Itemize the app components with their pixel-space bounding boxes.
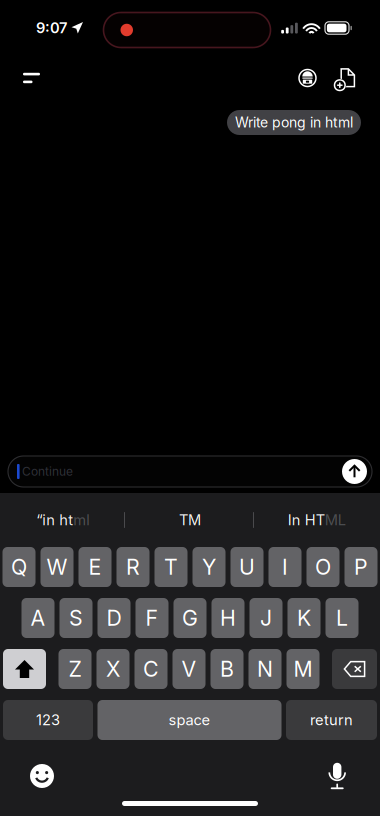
staticText: Q [11, 554, 27, 580]
button[interactable]: H [211, 598, 244, 638]
staticText: T [164, 554, 178, 580]
staticText: “in ht [36, 511, 73, 529]
staticText: M [293, 656, 312, 682]
staticText: X [106, 656, 120, 682]
staticText: O [315, 554, 331, 580]
staticText: C [143, 656, 159, 682]
button[interactable]: F [135, 598, 168, 638]
staticText: H [220, 605, 236, 631]
staticText: In HT [288, 511, 325, 529]
staticText: P [354, 554, 368, 580]
button[interactable]: B [210, 649, 243, 689]
button[interactable]: O [306, 547, 339, 587]
button[interactable]: Q [2, 547, 35, 587]
button[interactable]: Z [58, 649, 91, 689]
button[interactable]: A [21, 598, 54, 638]
staticText: G [182, 605, 198, 631]
button[interactable]: R [116, 547, 149, 587]
staticText: D [106, 605, 121, 631]
staticText: A [30, 605, 45, 631]
staticText: R [126, 554, 140, 580]
staticText: ml [73, 511, 90, 529]
button[interactable]: D [97, 598, 130, 638]
staticText: K [297, 605, 311, 631]
staticText: Write pong in html [235, 114, 353, 131]
staticText: N [257, 656, 273, 682]
button[interactable]: G [173, 598, 206, 638]
button[interactable]: Send [340, 457, 369, 486]
button[interactable]: V [172, 649, 205, 689]
button[interactable]: Y [192, 547, 225, 587]
button[interactable]: T [154, 547, 187, 587]
staticText: 9:07 [36, 19, 67, 37]
button[interactable]: K [287, 598, 320, 638]
button[interactable]: Delete [332, 649, 377, 689]
staticText: Y [202, 554, 216, 580]
button[interactable]: I [268, 547, 301, 587]
button[interactable]: P [344, 547, 377, 587]
button[interactable]: S [59, 598, 92, 638]
button[interactable]: E [78, 547, 111, 587]
staticText: TM [179, 511, 201, 529]
staticText: Continue [22, 464, 73, 479]
staticText: Z [68, 656, 81, 682]
button[interactable]: L [325, 598, 358, 638]
staticText: S [69, 605, 83, 631]
button[interactable]: M [286, 649, 319, 689]
button[interactable]: Sidebar [0, 57, 56, 99]
staticText: space [168, 711, 210, 729]
button[interactable]: J [249, 598, 282, 638]
button[interactable]: N [248, 649, 281, 689]
staticText: E [88, 554, 101, 580]
button[interactable]: space [97, 700, 281, 740]
staticText: W [46, 554, 67, 580]
button[interactable]: Model picker [289, 56, 326, 99]
button[interactable]: TM [127, 493, 253, 547]
button[interactable]: X [96, 649, 129, 689]
staticText: ML [325, 511, 346, 529]
button[interactable]: “in ht [0, 493, 127, 547]
staticText: I [282, 554, 288, 580]
button[interactable]: In HT [253, 493, 380, 547]
staticText: U [239, 554, 255, 580]
button[interactable]: 123 [3, 700, 93, 740]
staticText: B [220, 656, 234, 682]
button[interactable]: New chat [326, 56, 380, 100]
button[interactable]: return [286, 700, 377, 740]
button[interactable]: U [230, 547, 263, 587]
staticText: 123 [36, 711, 60, 729]
staticText: L [336, 605, 348, 631]
button[interactable]: Emoji keyboard [16, 753, 68, 799]
button[interactable]: W [40, 547, 73, 587]
button[interactable]: C [134, 649, 167, 689]
button[interactable]: Shift [3, 649, 46, 689]
button[interactable]: Dictation [315, 752, 359, 799]
staticText: J [260, 605, 272, 631]
staticText: F [145, 605, 158, 631]
staticText: return [310, 711, 353, 729]
staticText: V [181, 656, 196, 682]
